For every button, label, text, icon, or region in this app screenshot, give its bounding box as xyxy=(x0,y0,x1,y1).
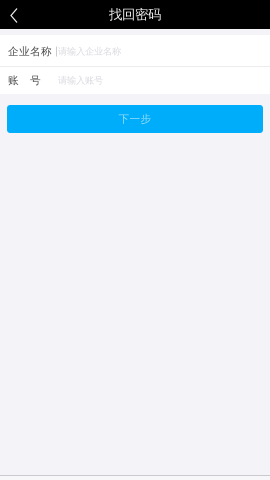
staticText: 找回密码 xyxy=(109,6,161,23)
staticText: 企业名称 xyxy=(8,45,52,58)
staticText: 请输入账号 xyxy=(58,75,103,86)
staticText: 账 号 xyxy=(8,74,41,87)
staticText: 请输入企业名称 xyxy=(58,46,121,57)
staticText: 下一步 xyxy=(118,112,151,125)
button[interactable]: 下一步 xyxy=(7,105,263,133)
button[interactable]: 企业名称 xyxy=(0,35,270,66)
button[interactable]: 账 号 xyxy=(0,67,270,94)
button[interactable]: Back xyxy=(0,0,26,29)
